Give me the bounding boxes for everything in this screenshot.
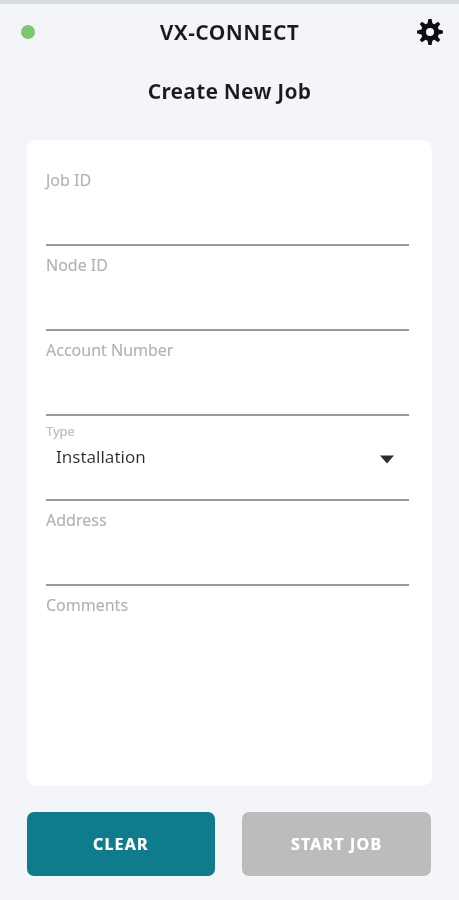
staticText: Job ID bbox=[46, 169, 92, 191]
staticText: Installation bbox=[56, 445, 146, 468]
button[interactable]: Job ID bbox=[27, 161, 432, 246]
staticText: Comments bbox=[46, 594, 129, 616]
staticText: CLEAR bbox=[93, 833, 149, 855]
button[interactable]: Type bbox=[27, 416, 432, 501]
button[interactable]: CLEAR bbox=[27, 812, 215, 876]
button[interactable]: Node ID bbox=[27, 246, 432, 331]
staticText: Address bbox=[46, 509, 107, 531]
button[interactable]: Settings bbox=[414, 16, 446, 48]
staticText: START JOB bbox=[291, 833, 383, 855]
staticText: Type bbox=[46, 422, 75, 440]
staticText: Node ID bbox=[46, 254, 108, 276]
button[interactable]: Connected status bbox=[21, 25, 35, 39]
button[interactable]: START JOB bbox=[242, 812, 431, 876]
button[interactable]: Address bbox=[27, 501, 432, 586]
staticText: Create New Job bbox=[0, 77, 459, 106]
button[interactable]: Comments bbox=[27, 586, 432, 672]
staticText: VX-CONNECT bbox=[0, 18, 459, 47]
button[interactable]: Account Number bbox=[27, 331, 432, 416]
staticText: Account Number bbox=[46, 339, 174, 361]
